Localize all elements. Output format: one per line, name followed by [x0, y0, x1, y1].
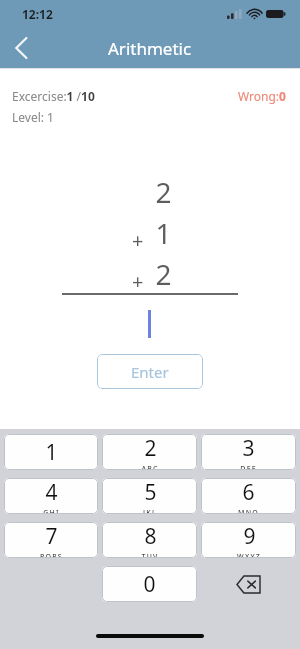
button[interactable]: 3: [201, 434, 296, 470]
button[interactable]: Backspace: [201, 566, 296, 602]
button[interactable]: 1: [4, 434, 98, 470]
staticText: Wrong:0: [238, 88, 286, 104]
staticText: DEF: [240, 464, 257, 470]
staticText: GHI: [43, 508, 60, 514]
staticText: 9: [243, 522, 256, 551]
staticText: 6: [242, 478, 255, 507]
staticText: 7: [45, 522, 58, 551]
staticText: 1: [45, 438, 58, 467]
staticText: JKL: [143, 508, 157, 514]
staticText: +: [132, 268, 144, 295]
staticText: +: [132, 227, 144, 254]
staticText: 12:12: [22, 6, 53, 22]
button[interactable]: 5: [102, 478, 197, 514]
staticText: Level: 1: [12, 109, 54, 125]
staticText: TUV: [141, 552, 159, 558]
button[interactable]: Back: [0, 28, 42, 68]
staticText: 2: [155, 255, 172, 293]
button[interactable]: Enter: [97, 354, 203, 389]
button[interactable]: 0: [102, 566, 197, 602]
staticText: 0: [143, 570, 156, 599]
staticText: 2: [155, 173, 172, 211]
button[interactable]: 9: [201, 522, 296, 558]
staticText: ABC: [141, 464, 159, 470]
staticText: 3: [242, 434, 255, 463]
staticText: Arithmetic: [108, 37, 192, 60]
button[interactable]: 6: [201, 478, 296, 514]
button[interactable]: 4: [4, 478, 98, 514]
staticText: 4: [45, 478, 58, 507]
staticText: 8: [144, 522, 157, 551]
staticText: MNO: [238, 508, 259, 514]
button[interactable]: 8: [102, 522, 197, 558]
staticText: PQRS: [40, 552, 63, 558]
staticText: 1: [155, 214, 172, 252]
staticText: WXYZ: [237, 552, 261, 558]
button[interactable]: 7: [4, 522, 98, 558]
staticText: 2: [144, 434, 157, 463]
button[interactable]: 2: [102, 434, 197, 470]
staticText: 5: [144, 478, 157, 507]
staticText: Enter: [131, 362, 169, 382]
staticText: Excercise:1 /10: [12, 88, 95, 104]
